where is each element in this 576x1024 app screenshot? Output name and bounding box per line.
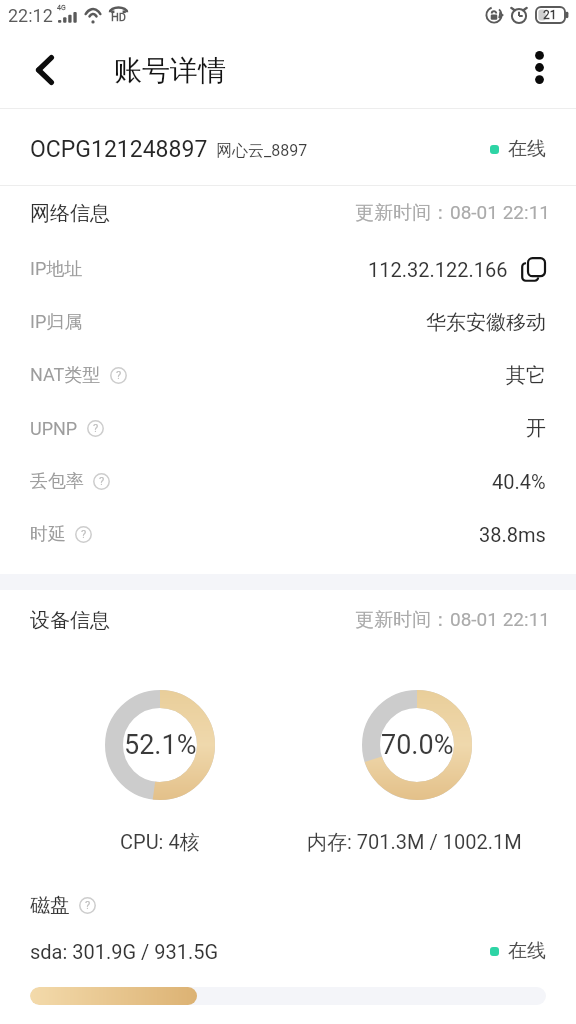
staticText: OCPG121248897 bbox=[30, 136, 208, 163]
button[interactable]: Help bbox=[75, 526, 92, 543]
staticText: 在线 bbox=[508, 939, 546, 963]
staticText: NAT类型 bbox=[30, 364, 101, 387]
staticText: 磁盘 bbox=[30, 893, 70, 918]
staticText: HD bbox=[111, 11, 127, 24]
staticText: 其它 bbox=[506, 363, 546, 388]
button[interactable]: More options bbox=[505, 38, 573, 96]
staticText: IP地址 bbox=[30, 258, 83, 281]
staticText: 更新时间：08-01 22:11 bbox=[355, 608, 550, 632]
button[interactable]: Usage 70.0% bbox=[362, 690, 472, 800]
button[interactable]: 时延 bbox=[0, 508, 576, 560]
button[interactable]: sda: 301.9G / 931.5G bbox=[0, 937, 576, 965]
staticText: ? bbox=[99, 475, 105, 488]
staticText: 22:12 bbox=[8, 5, 53, 26]
staticText: 112.32.122.166 bbox=[368, 258, 508, 281]
button[interactable]: Copy bbox=[521, 257, 546, 282]
button[interactable]: Help bbox=[87, 420, 104, 437]
staticText: CPU: 4核 bbox=[120, 830, 200, 855]
staticText: 在线 bbox=[508, 137, 546, 161]
staticText: 38.8ms bbox=[479, 523, 546, 546]
staticText: 网心云_8897 bbox=[216, 141, 308, 161]
staticText: 内存: 701.3M / 1002.1M bbox=[307, 830, 522, 855]
button[interactable]: UPNP bbox=[0, 402, 576, 454]
staticText: 时延 bbox=[30, 523, 66, 546]
staticText: 更新时间：08-01 22:11 bbox=[355, 201, 550, 225]
button[interactable]: Help bbox=[110, 367, 127, 384]
staticText: 52.1% bbox=[124, 729, 197, 761]
staticText: 4G bbox=[57, 4, 66, 12]
button[interactable]: OCPG121248897 bbox=[0, 115, 576, 183]
button[interactable]: Help bbox=[79, 897, 96, 914]
staticText: ? bbox=[85, 899, 91, 912]
button[interactable]: IP归属 bbox=[0, 296, 576, 348]
staticText: UPNP bbox=[30, 418, 78, 439]
staticText: 21 bbox=[543, 8, 557, 22]
staticText: 账号详情 bbox=[114, 53, 226, 88]
button[interactable]: NAT类型 bbox=[0, 349, 576, 401]
staticText: ? bbox=[116, 369, 122, 382]
staticText: IP归属 bbox=[30, 311, 83, 334]
staticText: 40.4% bbox=[492, 470, 546, 493]
staticText: 开 bbox=[526, 416, 546, 441]
staticText: 丢包率 bbox=[30, 470, 84, 493]
staticText: ? bbox=[93, 422, 99, 435]
staticText: 设备信息 bbox=[30, 608, 110, 633]
button[interactable]: Back bbox=[11, 41, 79, 99]
staticText: 70.0% bbox=[381, 729, 454, 761]
button[interactable]: Help bbox=[93, 473, 110, 490]
staticText: 华东安徽移动 bbox=[426, 310, 546, 335]
button[interactable]: 丢包率 bbox=[0, 455, 576, 507]
button[interactable]: 磁盘 bbox=[30, 891, 96, 919]
button[interactable]: IP地址 bbox=[0, 243, 576, 295]
staticText: sda: 301.9G / 931.5G bbox=[30, 940, 219, 963]
staticText: 网络信息 bbox=[30, 201, 110, 226]
staticText: ? bbox=[81, 528, 87, 541]
button[interactable]: Usage 52.1% bbox=[105, 690, 215, 800]
